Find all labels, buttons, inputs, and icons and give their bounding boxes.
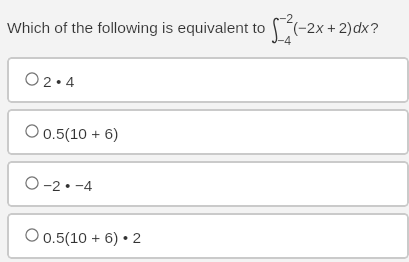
button[interactable]: 0.5(10 + 6) • 2 — [7, 213, 409, 259]
staticText: −4 — [277, 34, 292, 48]
staticText: (−2 — [293, 19, 316, 36]
staticText: 2 • 4 — [43, 73, 75, 90]
button[interactable]: 2 • 4 — [7, 57, 409, 103]
staticText: x — [316, 19, 324, 36]
staticText: −2 • −4 — [43, 177, 93, 194]
staticText: dx — [353, 19, 369, 36]
staticText: 0.5(10 + 6) — [43, 125, 119, 142]
staticText: 0.5(10 + 6) • 2 — [43, 229, 142, 246]
staticText: −2 — [279, 12, 294, 26]
staticText: ? — [369, 19, 379, 36]
button[interactable]: 0.5(10 + 6) — [7, 109, 409, 155]
button[interactable]: −2 • −4 — [7, 161, 409, 207]
staticText: Which of the following is equivalent to — [7, 19, 266, 36]
staticText: + 2) — [324, 19, 353, 36]
